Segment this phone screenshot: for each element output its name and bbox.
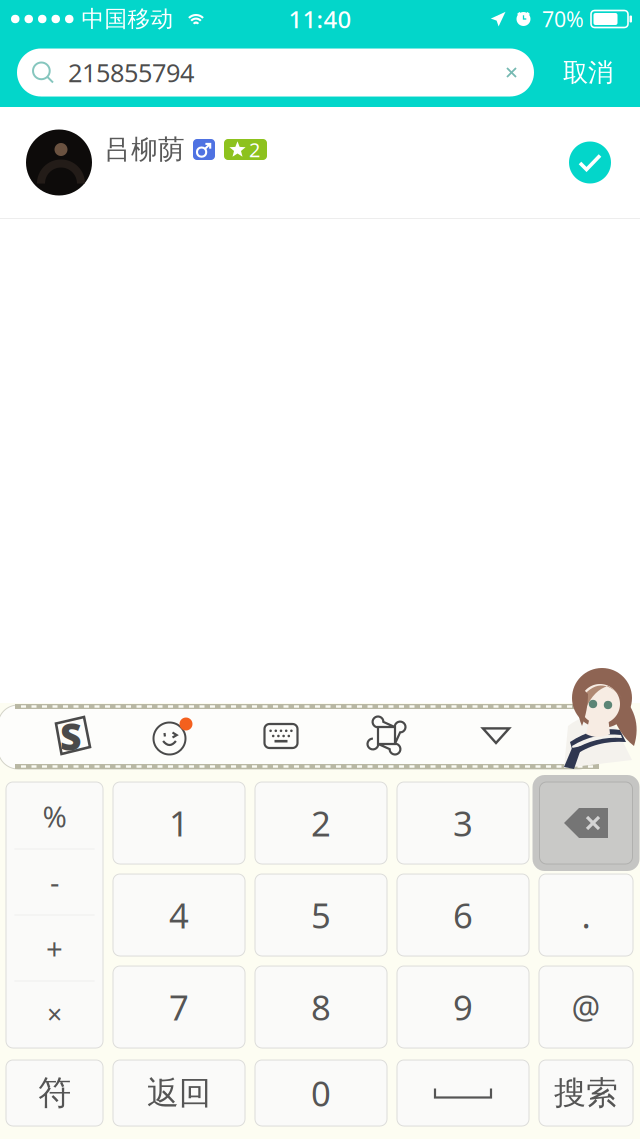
staticText: 中国移动 (81, 5, 173, 33)
staticText: 6 (453, 892, 473, 938)
button[interactable]: Switch keyboard (233, 708, 329, 764)
button[interactable]: . (539, 874, 633, 956)
staticText: 1 (169, 800, 189, 846)
staticText: % (42, 796, 66, 835)
staticText: . (581, 892, 590, 938)
button[interactable]: 8 (255, 966, 387, 1048)
staticText: 7 (169, 984, 189, 1030)
button[interactable]: 5 (255, 874, 387, 956)
staticText: 8 (311, 984, 331, 1030)
staticText: 符 (38, 1072, 71, 1113)
button[interactable]: 215855794 (17, 48, 534, 96)
button[interactable]: Delete (532, 775, 639, 871)
staticText: 4 (169, 892, 189, 938)
staticText: S (60, 711, 82, 761)
button[interactable]: 4 (113, 874, 245, 956)
staticText: - (50, 862, 59, 901)
staticText: 2 (311, 800, 331, 846)
button[interactable]: 取消 (544, 42, 632, 102)
staticText: 吕柳荫 (104, 133, 185, 166)
staticText: 2 (249, 136, 260, 163)
staticText: 0 (311, 1070, 331, 1116)
button[interactable]: 6 (397, 874, 529, 956)
staticText: 返回 (147, 1073, 211, 1113)
staticText: 3 (453, 800, 473, 846)
button[interactable]: 1 (113, 782, 245, 864)
button[interactable]: 3 (397, 782, 529, 864)
staticText: 取消 (563, 57, 613, 88)
staticText: 70% (542, 5, 584, 33)
button[interactable]: 搜索 (539, 1060, 633, 1126)
button[interactable]: 2 (255, 782, 387, 864)
button[interactable]: 返回 (113, 1060, 245, 1126)
button[interactable]: × (6, 981, 103, 1046)
button[interactable]: - (6, 849, 103, 914)
button[interactable]: 9 (397, 966, 529, 1048)
button[interactable]: Space (397, 1060, 529, 1126)
staticText: 9 (453, 984, 473, 1030)
staticText: 215855794 (68, 56, 194, 89)
button[interactable]: 符 (6, 1060, 103, 1126)
button[interactable]: Hide keyboard (448, 708, 544, 764)
staticText: 11:40 (288, 3, 351, 35)
staticText: 搜索 (554, 1073, 618, 1113)
button[interactable]: Tools (339, 708, 435, 764)
button[interactable]: % (6, 783, 103, 848)
button[interactable]: Sogou input method (22, 708, 118, 764)
staticText: @ (571, 986, 600, 1028)
button[interactable]: 0 (255, 1060, 387, 1126)
staticText: 5 (311, 892, 331, 938)
staticText: + (46, 928, 63, 967)
staticText: × (47, 996, 62, 1032)
button[interactable]: 7 (113, 966, 245, 1048)
button[interactable]: 吕柳荫 (0, 107, 640, 218)
button[interactable]: Emoji (128, 708, 224, 764)
button[interactable]: @ (539, 966, 633, 1048)
button[interactable]: + (6, 915, 103, 980)
